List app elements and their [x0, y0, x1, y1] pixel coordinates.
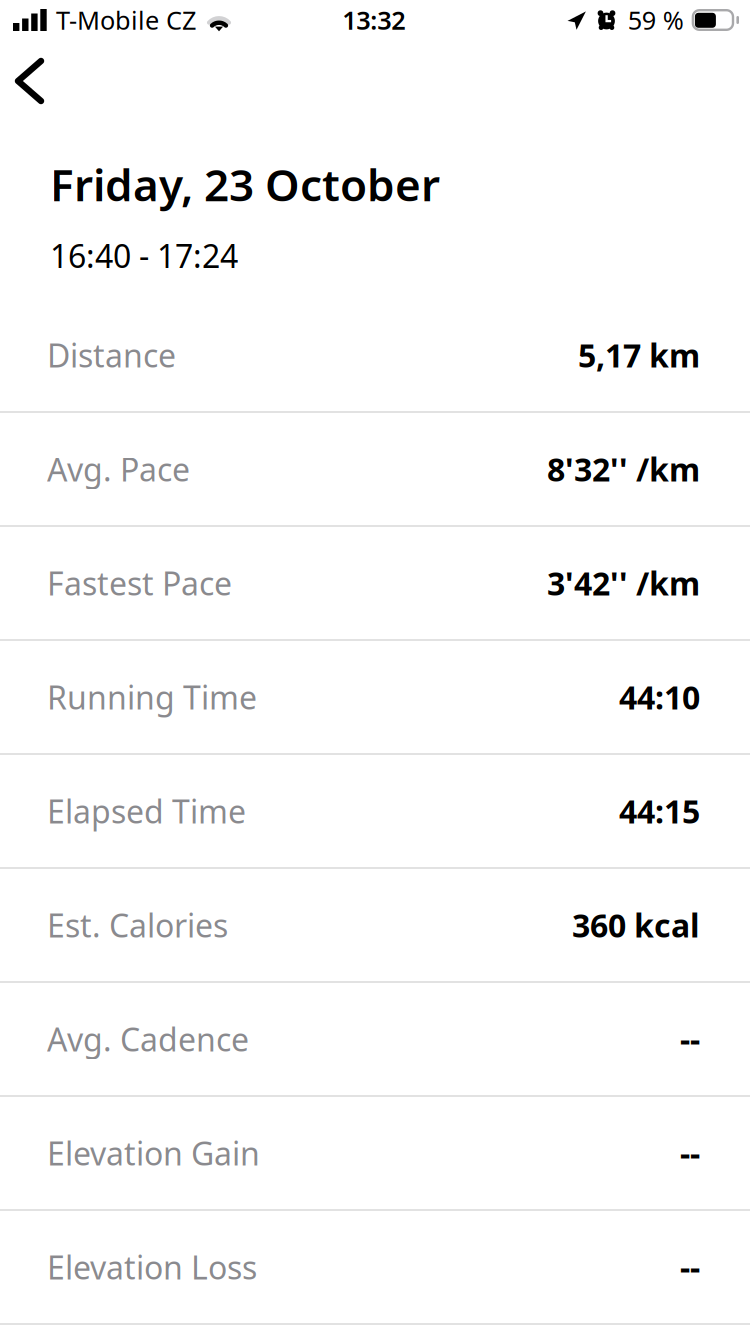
staticText: 16:40 - 17:24: [50, 234, 238, 277]
staticText: Avg. Cadence: [47, 1018, 249, 1060]
staticText: 3'42'' /km: [547, 562, 700, 604]
staticText: Friday, 23 October: [50, 155, 440, 213]
staticText: 59 %: [628, 3, 684, 37]
staticText: --: [680, 1246, 700, 1288]
staticText: Avg. Pace: [47, 448, 190, 490]
staticText: Running Time: [47, 676, 257, 718]
staticText: 44:10: [619, 676, 700, 718]
staticText: Elevation Gain: [47, 1132, 260, 1174]
staticText: 13:32: [342, 3, 405, 37]
staticText: 44:15: [619, 790, 700, 832]
staticText: Fastest Pace: [47, 562, 232, 604]
staticText: T-Mobile CZ: [56, 3, 196, 37]
staticText: --: [680, 1018, 700, 1060]
staticText: 5,17 km: [578, 334, 700, 376]
staticText: 8'32'' /km: [547, 448, 700, 490]
staticText: 360 kcal: [572, 904, 700, 946]
staticText: Est. Calories: [47, 904, 228, 946]
staticText: --: [680, 1132, 700, 1174]
staticText: Elevation Loss: [47, 1246, 257, 1288]
button[interactable]: Back: [0, 31, 90, 123]
staticText: Distance: [47, 334, 176, 376]
staticText: Elapsed Time: [47, 790, 246, 832]
